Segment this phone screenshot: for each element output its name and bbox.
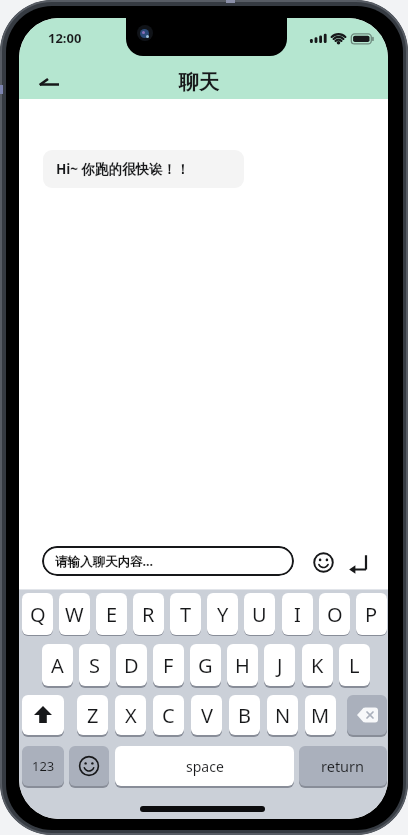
button[interactable]: D xyxy=(116,644,147,686)
staticText: U xyxy=(252,601,267,628)
button[interactable]: B xyxy=(229,695,260,735)
button[interactable]: U xyxy=(244,593,275,635)
staticText: 12:00 xyxy=(48,29,82,47)
button[interactable]: R xyxy=(133,593,164,635)
button[interactable]: Y xyxy=(207,593,238,635)
staticText: D xyxy=(124,652,139,679)
button[interactable]: 123 xyxy=(22,746,64,786)
button[interactable]: J xyxy=(264,644,295,686)
button[interactable] xyxy=(348,553,370,574)
button[interactable] xyxy=(22,695,64,735)
button[interactable] xyxy=(31,68,69,96)
button[interactable]: T xyxy=(170,593,201,635)
staticText: C xyxy=(162,702,175,729)
button[interactable]: F xyxy=(153,644,184,686)
staticText: K xyxy=(311,652,324,679)
button[interactable]: K xyxy=(302,644,333,686)
staticText: 聊天 xyxy=(179,70,219,95)
staticText: J xyxy=(277,652,283,679)
button[interactable]: N xyxy=(267,695,298,735)
staticText: S xyxy=(89,652,100,679)
staticText: X xyxy=(125,702,137,729)
staticText: Hi~ 你跑的很快诶！！ xyxy=(56,160,190,178)
button[interactable]: X xyxy=(115,695,146,735)
staticText: G xyxy=(198,652,213,679)
button[interactable]: G xyxy=(190,644,221,686)
button[interactable]: Q xyxy=(22,593,53,635)
staticText: 123 xyxy=(32,757,55,775)
button[interactable]: M xyxy=(305,695,336,735)
button[interactable]: space xyxy=(115,746,294,786)
button[interactable]: S xyxy=(79,644,110,686)
staticText: Q xyxy=(30,601,46,628)
button[interactable]: C xyxy=(153,695,184,735)
staticText: P xyxy=(365,601,378,628)
staticText: R xyxy=(142,601,155,628)
button[interactable]: P xyxy=(356,593,387,635)
button[interactable]: Hi~ 你跑的很快诶！！ xyxy=(43,150,244,188)
staticText: A xyxy=(51,652,64,679)
button[interactable] xyxy=(69,746,109,786)
button[interactable] xyxy=(313,552,334,573)
button[interactable] xyxy=(347,695,387,735)
staticText: M xyxy=(311,702,330,729)
button[interactable]: V xyxy=(191,695,222,735)
button[interactable]: A xyxy=(42,644,73,686)
staticText: Z xyxy=(87,702,99,729)
staticText: E xyxy=(106,601,118,628)
button[interactable]: E xyxy=(96,593,127,635)
staticText: T xyxy=(180,601,192,628)
button[interactable]: 请输入聊天内容... xyxy=(42,546,294,576)
staticText: F xyxy=(163,652,174,679)
button[interactable]: Z xyxy=(77,695,108,735)
button[interactable]: O xyxy=(319,593,350,635)
staticText: space xyxy=(186,757,224,776)
staticText: W xyxy=(65,601,84,628)
button[interactable]: H xyxy=(227,644,258,686)
staticText: O xyxy=(327,601,343,628)
staticText: return xyxy=(321,756,365,776)
staticText: B xyxy=(238,702,251,729)
staticText: Y xyxy=(217,601,229,628)
staticText: L xyxy=(349,652,360,679)
button[interactable]: L xyxy=(339,644,370,686)
button[interactable]: return xyxy=(299,746,387,786)
staticText: H xyxy=(235,652,250,679)
staticText: N xyxy=(275,702,291,729)
button[interactable]: W xyxy=(59,593,90,635)
button[interactable]: I xyxy=(282,593,313,635)
staticText: I xyxy=(294,601,301,628)
staticText: 请输入聊天内容... xyxy=(55,553,154,570)
staticText: V xyxy=(201,702,213,729)
